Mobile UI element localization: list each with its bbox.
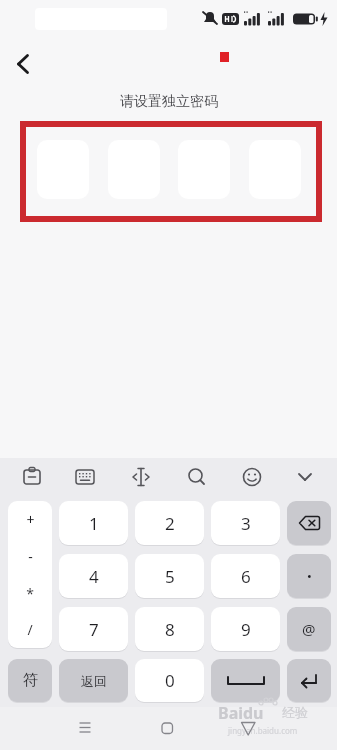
button[interactable] <box>124 461 158 495</box>
button[interactable]: + <box>8 501 52 648</box>
staticText: 5 <box>165 565 175 588</box>
button[interactable]: 1 <box>59 501 128 545</box>
button[interactable] <box>288 461 322 495</box>
button[interactable] <box>211 659 280 702</box>
button[interactable]: 返回 <box>59 659 128 702</box>
staticText: 6 <box>241 565 251 588</box>
button[interactable] <box>287 659 331 702</box>
button[interactable] <box>152 713 182 743</box>
button[interactable] <box>287 501 331 545</box>
staticText: 请设置独立密码 <box>120 93 218 111</box>
staticText: · <box>307 565 312 588</box>
staticText: @ <box>302 619 316 639</box>
staticText: 1 <box>89 512 99 535</box>
button[interactable]: · <box>287 554 331 598</box>
button[interactable] <box>233 713 263 743</box>
button[interactable]: 6 <box>211 554 280 598</box>
button[interactable]: 符 <box>8 659 52 702</box>
button[interactable]: 7 <box>59 607 128 651</box>
staticText: * <box>26 584 34 603</box>
staticText: 3 <box>241 512 251 535</box>
staticText: + <box>26 510 35 529</box>
button[interactable] <box>68 461 102 495</box>
staticText: 2 <box>165 512 175 535</box>
button[interactable]: @ <box>287 607 331 651</box>
button[interactable] <box>70 713 100 743</box>
staticText: 返回 <box>81 673 107 689</box>
staticText: 符 <box>23 671 38 690</box>
button[interactable]: 0 <box>135 659 204 702</box>
button[interactable]: 5 <box>135 554 204 598</box>
staticText: 9 <box>241 618 251 641</box>
button[interactable]: 4 <box>59 554 128 598</box>
staticText: 经验 <box>282 704 308 720</box>
button[interactable] <box>6 46 42 82</box>
button[interactable]: 8 <box>135 607 204 651</box>
button[interactable] <box>179 461 213 495</box>
staticText: 4 <box>89 565 99 588</box>
staticText: 0 <box>165 669 175 692</box>
button[interactable]: 3 <box>211 501 280 545</box>
staticText: / <box>27 620 33 639</box>
staticText: 8 <box>165 618 175 641</box>
button[interactable] <box>15 461 49 495</box>
button[interactable] <box>235 461 269 495</box>
staticText: 7 <box>89 618 99 641</box>
button[interactable]: 2 <box>135 501 204 545</box>
staticText: - <box>28 547 33 566</box>
staticText: jingyan.baidu.com <box>228 725 298 736</box>
staticText: Baidu <box>218 702 264 724</box>
button[interactable]: 9 <box>211 607 280 651</box>
